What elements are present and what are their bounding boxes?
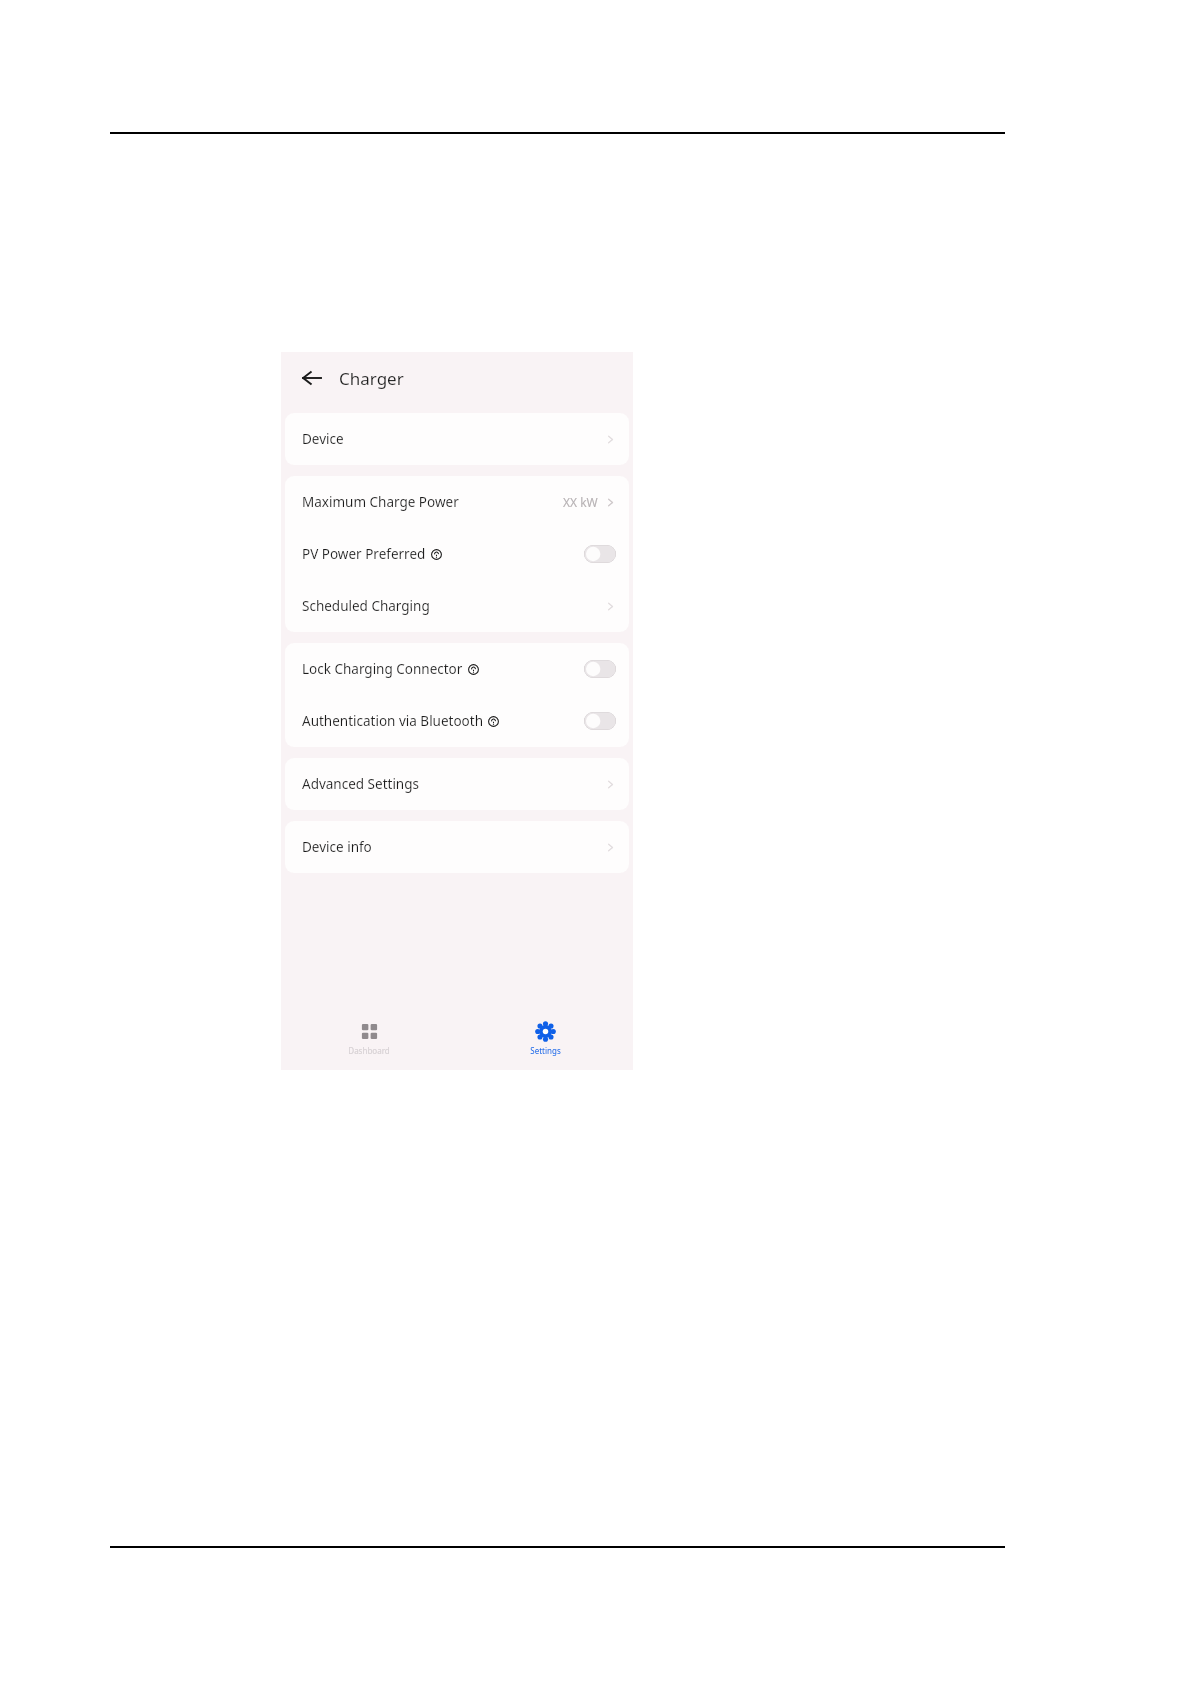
button[interactable]: Device <box>285 413 629 465</box>
staticText: Device info <box>302 838 372 856</box>
staticText: PV Power Preferred <box>302 545 426 563</box>
button[interactable]: Authentication via Bluetooth <box>285 695 629 747</box>
button[interactable]: Toggle <box>584 660 616 678</box>
button[interactable]: Device info <box>285 821 629 873</box>
staticText: Scheduled Charging <box>302 597 430 615</box>
button[interactable]: Back <box>295 361 329 395</box>
staticText: Advanced Settings <box>302 775 419 793</box>
button[interactable]: Toggle <box>584 712 616 730</box>
button[interactable]: Settings <box>457 1008 633 1070</box>
button[interactable]: Advanced Settings <box>285 758 629 810</box>
button[interactable]: Toggle <box>584 545 616 563</box>
button[interactable]: Scheduled Charging <box>285 580 629 632</box>
staticText: Lock Charging Connector <box>302 660 463 678</box>
staticText: Device <box>302 430 344 448</box>
button[interactable]: PV Power Preferred <box>285 528 629 580</box>
staticText: Dashboard <box>348 1045 390 1056</box>
staticText: Settings <box>530 1045 561 1056</box>
button[interactable]: Dashboard <box>281 1008 457 1070</box>
staticText: XX kW <box>563 494 598 510</box>
staticText: Authentication via Bluetooth <box>302 712 483 730</box>
staticText: Maximum Charge Power <box>302 493 459 511</box>
button[interactable]: Maximum Charge Power <box>285 476 629 528</box>
staticText: Charger <box>339 367 404 390</box>
button[interactable]: Lock Charging Connector <box>285 643 629 695</box>
